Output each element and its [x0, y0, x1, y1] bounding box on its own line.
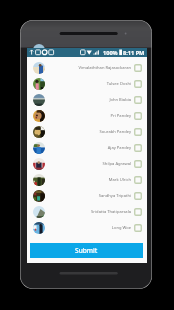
staticText: Sourabh Pandey [99, 129, 131, 135]
staticText: Sandhya Tripathi [98, 193, 131, 199]
button[interactable]: Submit [30, 243, 143, 258]
button[interactable]: Select Vimalaththan Rajasockaran [134, 64, 142, 72]
button[interactable]: Ajay Pandey [27, 140, 147, 156]
staticText: Mark Ulrich [108, 177, 131, 183]
staticText: 8:11 PM [123, 49, 145, 57]
button[interactable]: Shilpa Agrawal [27, 156, 147, 172]
staticText: 100% [103, 49, 118, 57]
staticText: John Biabia [109, 97, 131, 103]
button[interactable]: Select Tulsee Doshi [134, 80, 142, 88]
button[interactable]: John Biabia [27, 92, 147, 108]
staticText: Sridatta Thatiparsala [91, 209, 131, 215]
button[interactable]: Select Long Woe [134, 224, 142, 232]
button[interactable]: Select Mark Ulrich [134, 176, 142, 184]
button[interactable]: Sourabh Pandey [27, 124, 147, 140]
button[interactable]: Select Ajay Pandey [134, 144, 142, 152]
button[interactable]: Select Sridatta Thatiparsala [134, 208, 142, 216]
button[interactable]: Mark Ulrich [27, 172, 147, 188]
staticText: Vimalaththan Rajasockaran [78, 65, 131, 71]
staticText: Tulsee Doshi [106, 81, 131, 87]
button[interactable]: Select Sandhya Tripathi [134, 192, 142, 200]
button[interactable]: Select Sourabh Pandey [134, 128, 142, 136]
button[interactable]: Tulsee Doshi [27, 76, 147, 92]
button[interactable]: Select John Biabia [134, 96, 142, 104]
button[interactable]: Select Pri Pandey [134, 112, 142, 120]
button[interactable]: Vimalaththan Rajasockaran [27, 60, 147, 76]
staticText: Ajay Pandey [107, 145, 131, 151]
staticText: Submit [75, 246, 98, 255]
staticText: Long Woe [111, 225, 131, 231]
button[interactable]: Long Woe [27, 220, 147, 236]
staticText: Shilpa Agrawal [102, 161, 131, 167]
button[interactable]: Sridatta Thatiparsala [27, 204, 147, 220]
staticText: Pri Pandey [110, 113, 131, 119]
button[interactable]: Select Shilpa Agrawal [134, 160, 142, 168]
button[interactable]: Sandhya Tripathi [27, 188, 147, 204]
button[interactable]: Pri Pandey [27, 108, 147, 124]
